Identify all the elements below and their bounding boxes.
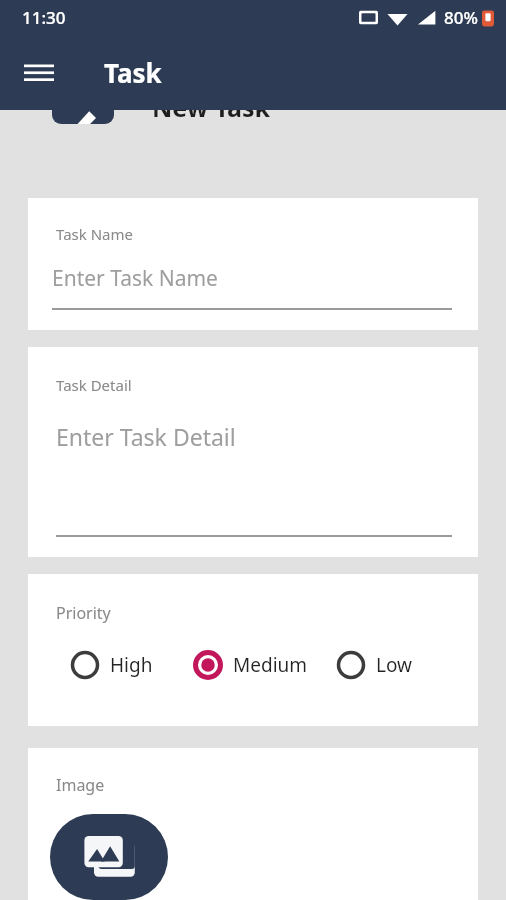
button[interactable]: Enter Task Name (52, 264, 452, 310)
staticText: Enter Task Name (52, 264, 218, 293)
staticText: Medium (233, 652, 308, 678)
button[interactable]: High (70, 650, 153, 680)
button[interactable]: Enter Task Detail (56, 395, 452, 557)
button[interactable]: Medium (193, 650, 308, 680)
staticText: Task Detail (56, 375, 132, 395)
button[interactable]: Open navigation menu (16, 49, 62, 95)
button[interactable]: Edit task (52, 92, 114, 124)
staticText: 11:30 (22, 6, 66, 29)
staticText: 80% (444, 6, 478, 29)
button[interactable]: Pick image (50, 814, 168, 900)
staticText: Task (104, 55, 162, 90)
staticText: High (110, 652, 153, 678)
staticText: Priority (56, 602, 111, 624)
staticText: Enter Task Detail (56, 421, 236, 452)
staticText: Image (56, 774, 105, 796)
button[interactable]: Low (336, 650, 413, 680)
staticText: Task Name (56, 224, 133, 244)
staticText: New Task (152, 90, 271, 122)
staticText: Low (376, 652, 413, 678)
